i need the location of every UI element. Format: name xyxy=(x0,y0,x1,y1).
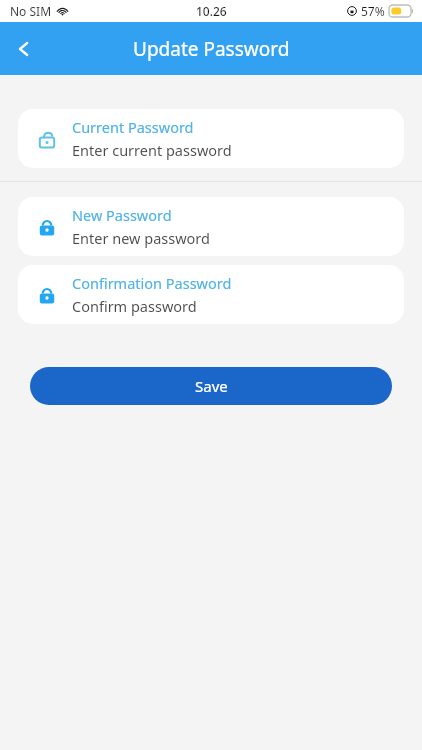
button[interactable]: New Password xyxy=(18,197,404,256)
button[interactable]: Back xyxy=(0,25,48,73)
staticText: 10.26 xyxy=(196,3,227,19)
staticText: Confirm password xyxy=(72,296,197,316)
staticText: Save xyxy=(195,376,228,396)
staticText: Enter current password xyxy=(72,140,232,160)
staticText: Current Password xyxy=(72,117,194,137)
button[interactable]: Confirmation Password xyxy=(18,265,404,324)
staticText: No SIM xyxy=(10,3,52,19)
button[interactable]: Save xyxy=(30,367,392,405)
staticText: Enter new password xyxy=(72,228,210,248)
button[interactable]: Current Password xyxy=(18,109,404,168)
staticText: 57% xyxy=(361,3,385,19)
staticText: New Password xyxy=(72,205,172,225)
staticText: Confirmation Password xyxy=(72,273,232,293)
staticText: Update Password xyxy=(133,36,290,62)
